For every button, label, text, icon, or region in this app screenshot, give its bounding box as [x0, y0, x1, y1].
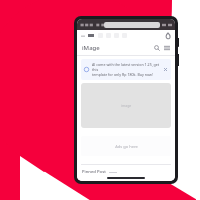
button[interactable]: Browser menu — [162, 22, 172, 28]
button[interactable]: Theme — [165, 33, 171, 39]
staticText: Ads go here — [115, 144, 138, 149]
staticText: Pinned Post — [82, 169, 106, 175]
staticText: template for only Rp 180k. Buy now! — [92, 72, 153, 77]
button[interactable]: Menu — [164, 45, 170, 51]
button[interactable]: Al come with the latest version 1.25, ge… — [81, 59, 171, 80]
button[interactable]: Search — [154, 45, 160, 51]
button[interactable]: Ads go here — [81, 136, 171, 156]
button[interactable]: Address bar — [104, 22, 160, 28]
staticText: Al come with the latest version 1.25, ge… — [92, 62, 161, 72]
button[interactable]: Dismiss — [163, 67, 168, 72]
button[interactable]: Pinned Post — [82, 169, 170, 175]
staticText: image — [121, 103, 132, 108]
staticText: iMage — [82, 44, 100, 52]
